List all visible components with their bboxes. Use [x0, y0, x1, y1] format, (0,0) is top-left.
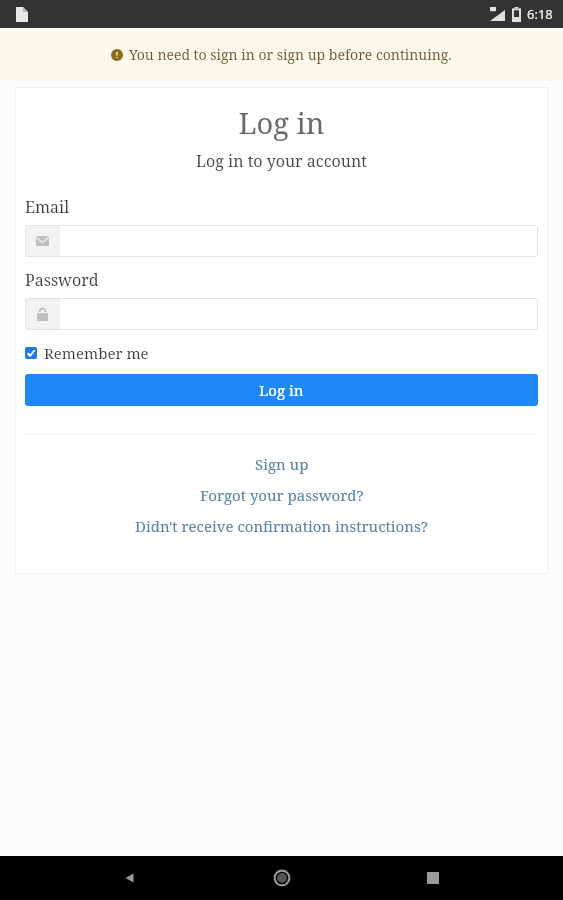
- button[interactable]: Remember me: [25, 341, 149, 365]
- staticText: Log in: [25, 103, 538, 142]
- staticText: 6:18: [527, 5, 553, 23]
- button[interactable]: Back: [108, 856, 152, 900]
- button[interactable]: Didn't receive confirmation instructions…: [25, 516, 538, 536]
- staticText: Remember me: [44, 343, 149, 363]
- button[interactable]: Password field: [25, 298, 538, 330]
- staticText: Log in: [259, 380, 304, 400]
- staticText: Forgot your password?: [200, 485, 364, 505]
- staticText: Email: [25, 196, 70, 218]
- staticText: Log in to your account: [25, 150, 538, 172]
- button[interactable]: Sign up: [25, 454, 538, 474]
- button[interactable]: Log in: [25, 374, 538, 406]
- staticText: You need to sign in or sign up before co…: [129, 45, 452, 64]
- staticText: Didn't receive confirmation instructions…: [135, 516, 428, 536]
- button[interactable]: Forgot your password?: [25, 485, 538, 505]
- staticText: Sign up: [255, 454, 309, 474]
- button[interactable]: Home: [260, 856, 304, 900]
- button[interactable]: Email field: [25, 225, 538, 257]
- staticText: Password: [25, 269, 99, 291]
- button[interactable]: Recent apps: [411, 856, 455, 900]
